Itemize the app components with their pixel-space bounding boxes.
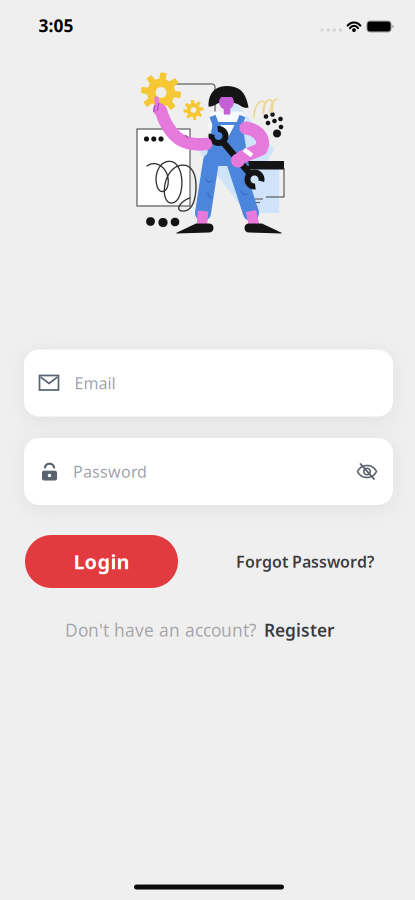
staticText: Register xyxy=(264,618,335,641)
staticText: Email xyxy=(74,372,115,394)
staticText: 3:05 xyxy=(38,14,73,37)
staticText: Login xyxy=(73,548,129,575)
button[interactable]: Forgot Password? xyxy=(236,551,374,572)
staticText: Forgot Password? xyxy=(236,551,374,572)
button[interactable]: Login xyxy=(25,535,178,588)
staticText: Don't have an account? xyxy=(65,618,257,641)
button[interactable]: Password xyxy=(24,438,393,505)
button[interactable]: Email xyxy=(24,349,393,416)
button[interactable]: Register xyxy=(264,618,335,641)
button[interactable]: Show password xyxy=(356,460,393,482)
staticText: Password xyxy=(73,461,147,482)
